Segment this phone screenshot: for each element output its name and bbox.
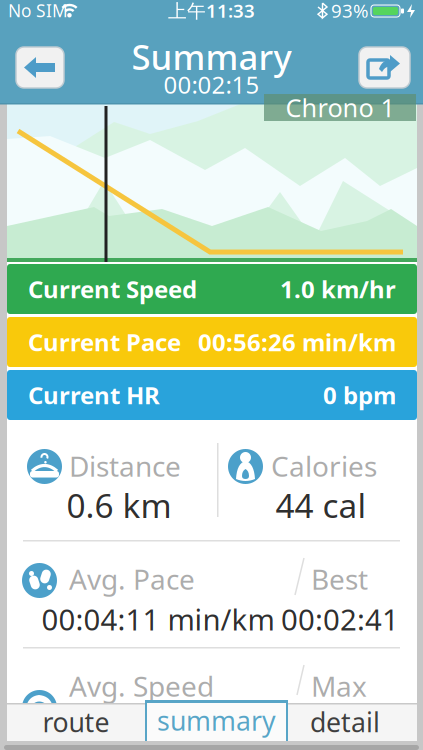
staticText: Best [311,560,368,598]
button[interactable]: Share [359,47,410,88]
staticText: Chrono 1 [285,91,394,124]
staticText: 1.0 km/hr [280,273,396,305]
staticText: Current HR [28,379,160,411]
staticText: 0.6 km [66,483,171,527]
staticText: detail [310,704,380,740]
staticText: No SIM [8,0,68,22]
staticText: Avg. Pace [69,560,195,598]
staticText: 00:02:41 [281,599,399,638]
staticText: summary [157,703,276,738]
button[interactable]: route [7,703,145,741]
staticText: Summary [131,33,291,79]
staticText: Avg. Speed [69,667,214,705]
staticText: 上午11:33 [168,0,255,23]
staticText: Current Pace [28,326,181,358]
staticText: 93% [331,0,369,23]
staticText: Current Speed [28,273,197,305]
staticText: Distance [69,447,181,485]
staticText: 00:56:26 min/km [198,326,396,358]
button[interactable]: summary [145,700,288,741]
staticText: 00:02:15 [163,69,259,100]
staticText: Calories [271,447,377,485]
button[interactable]: detail [288,703,402,741]
staticText: 0 bpm [323,379,396,411]
staticText: Max [311,667,367,705]
staticText: 44 cal [275,483,366,527]
staticText: route [42,704,109,740]
button[interactable]: Back [16,47,64,88]
staticText: 00:04:11 min/km [41,599,274,638]
